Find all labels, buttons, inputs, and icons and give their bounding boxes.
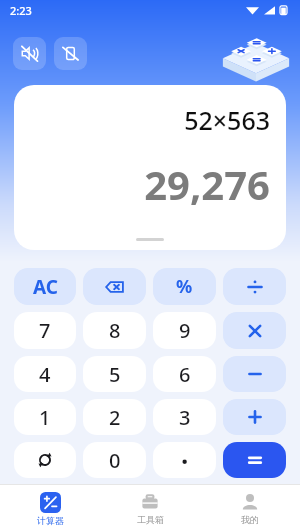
button[interactable]: 5 — [83, 356, 146, 392]
button[interactable]: Plus — [223, 399, 286, 435]
button[interactable]: % — [153, 268, 216, 305]
staticText: 52×563 — [184, 103, 270, 137]
staticText: 计算器 — [37, 515, 64, 526]
staticText: · — [181, 443, 189, 478]
button[interactable]: Calculator — [0, 485, 100, 532]
button[interactable]: 9 — [153, 312, 216, 349]
staticText: 2 — [109, 404, 121, 431]
staticText: 7 — [39, 317, 51, 344]
button[interactable]: Mute — [13, 37, 46, 70]
staticText: 29,276 — [144, 157, 270, 211]
button[interactable]: 7 — [14, 312, 76, 349]
button[interactable]: 3 — [153, 399, 216, 435]
button[interactable]: Equals — [223, 442, 286, 478]
staticText: 我的 — [241, 514, 259, 525]
button[interactable]: 52×563 — [14, 85, 286, 250]
button[interactable]: Minus — [223, 356, 286, 392]
button[interactable]: 0 — [83, 442, 146, 478]
button[interactable]: 1 — [14, 399, 76, 435]
button[interactable]: 2 — [83, 399, 146, 435]
button[interactable]: Convert — [14, 442, 76, 478]
staticText: 1 — [39, 404, 51, 431]
button[interactable]: Divide — [223, 268, 286, 305]
staticText: 5 — [109, 361, 121, 388]
button[interactable]: · — [153, 442, 216, 478]
button[interactable]: 4 — [14, 356, 76, 392]
staticText: % — [176, 274, 193, 299]
button[interactable]: Backspace — [83, 268, 146, 305]
button[interactable]: 6 — [153, 356, 216, 392]
staticText: 2:23 — [10, 3, 32, 18]
staticText: 3 — [179, 404, 191, 431]
staticText: 工具箱 — [137, 514, 164, 525]
staticText: 8 — [109, 317, 121, 344]
button[interactable]: Vibrate off — [54, 37, 87, 70]
staticText: 9 — [179, 317, 191, 344]
button[interactable]: Toolbox — [100, 485, 200, 532]
button[interactable]: Profile — [200, 485, 300, 532]
staticText: 0 — [109, 447, 121, 474]
staticText: 4 — [39, 361, 51, 388]
button[interactable]: AC — [14, 268, 76, 305]
staticText: 6 — [179, 361, 191, 388]
button[interactable]: 8 — [83, 312, 146, 349]
button[interactable]: Multiply — [223, 312, 286, 349]
staticText: AC — [33, 274, 58, 300]
